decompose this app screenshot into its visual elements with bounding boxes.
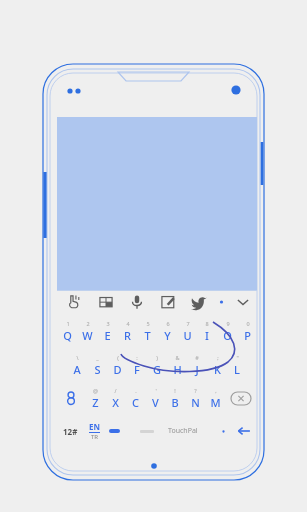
staticText: TR [91, 433, 99, 441]
button[interactable]: 8 [197, 314, 217, 348]
staticText: / [114, 387, 117, 394]
button[interactable]: 1 [57, 314, 77, 348]
button[interactable]: 7 [177, 314, 197, 348]
staticText: 6 [166, 320, 170, 327]
staticText: X [112, 395, 119, 410]
button[interactable]: Gesture typing [57, 290, 90, 314]
staticText: 8 [205, 320, 209, 327]
button[interactable]: " [227, 348, 247, 382]
staticText: # [195, 354, 199, 361]
button[interactable]: Layout [90, 290, 121, 314]
staticText: \ [76, 354, 79, 361]
staticText: T [144, 328, 151, 343]
staticText: ? [194, 387, 197, 394]
staticText: I [205, 328, 209, 343]
staticText: 12# [63, 426, 78, 437]
button[interactable]: Backspace [225, 382, 257, 414]
button[interactable]: 9 [217, 314, 237, 348]
staticText: @ [93, 387, 98, 394]
button[interactable]: 5 [137, 314, 157, 348]
staticText: 7 [186, 320, 190, 327]
button[interactable]: 3 [97, 314, 117, 348]
staticText: : [136, 354, 138, 361]
staticText: 5 [146, 320, 150, 327]
button[interactable]: _ [87, 348, 107, 382]
button[interactable]: Collapse keyboard [229, 290, 257, 314]
button[interactable]: \ [67, 348, 87, 382]
staticText: 9 [226, 320, 230, 327]
staticText: H [173, 362, 182, 377]
button[interactable]: / [105, 382, 125, 414]
button[interactable]: Twitter [183, 290, 214, 314]
staticText: 2 [86, 320, 90, 327]
staticText: M [210, 395, 221, 410]
staticText: , [215, 387, 217, 394]
staticText: E [104, 328, 111, 343]
staticText: 3 [106, 320, 110, 327]
staticText: N [191, 395, 200, 410]
staticText: U [183, 328, 192, 343]
button[interactable]: & [167, 348, 187, 382]
button[interactable]: @ [85, 382, 105, 414]
button[interactable]: . [125, 382, 145, 414]
button[interactable]: Period [215, 414, 231, 448]
staticText: C [132, 395, 139, 410]
button[interactable]: 0 [237, 314, 257, 348]
staticText: V [152, 395, 159, 410]
button[interactable]: Language switch [105, 414, 123, 448]
staticText: ! [174, 387, 176, 394]
staticText: B [171, 395, 179, 410]
staticText: G [153, 362, 161, 377]
button[interactable]: ) [147, 348, 167, 382]
staticText: _ [96, 354, 99, 361]
staticText: S [94, 362, 101, 377]
button[interactable]: EN [83, 414, 105, 448]
staticText: " [236, 354, 239, 361]
staticText: EN [89, 421, 100, 432]
staticText: Y [164, 328, 171, 343]
staticText: & [175, 354, 180, 361]
button[interactable]: Shift [57, 382, 85, 414]
staticText: ( [117, 354, 119, 361]
staticText: ) [156, 354, 158, 361]
button[interactable]: : [127, 348, 147, 382]
staticText: K [214, 362, 221, 377]
staticText: 0 [246, 320, 250, 327]
staticText: W [82, 328, 93, 343]
button[interactable]: ! [165, 382, 185, 414]
staticText: L [234, 362, 240, 377]
staticText: F [134, 362, 140, 377]
staticText: D [113, 362, 122, 377]
staticText: R [124, 328, 131, 343]
button[interactable]: ( [107, 348, 127, 382]
button[interactable]: Voice input [121, 290, 152, 314]
button[interactable]: # [187, 348, 207, 382]
button[interactable]: 4 [117, 314, 137, 348]
button[interactable]: Space [123, 414, 215, 448]
button[interactable]: , [205, 382, 225, 414]
staticText: Z [92, 395, 99, 410]
staticText: TouchPal [168, 426, 198, 436]
button[interactable]: ' [145, 382, 165, 414]
button[interactable]: 6 [157, 314, 177, 348]
button[interactable]: More [214, 290, 229, 314]
staticText: P [244, 328, 251, 343]
staticText: J [195, 362, 199, 377]
staticText: O [223, 328, 232, 343]
button[interactable]: 12# [57, 414, 83, 448]
button[interactable]: ; [207, 348, 227, 382]
staticText: . [135, 387, 137, 394]
staticText: ' [155, 387, 157, 394]
button[interactable]: Edit [152, 290, 183, 314]
staticText: ; [217, 354, 219, 361]
staticText: 1 [66, 320, 70, 327]
staticText: 4 [126, 320, 130, 327]
button[interactable]: 2 [77, 314, 97, 348]
staticText: Q [63, 328, 72, 343]
staticText: A [73, 362, 81, 377]
button[interactable]: ? [185, 382, 205, 414]
button[interactable]: Enter [231, 414, 257, 448]
